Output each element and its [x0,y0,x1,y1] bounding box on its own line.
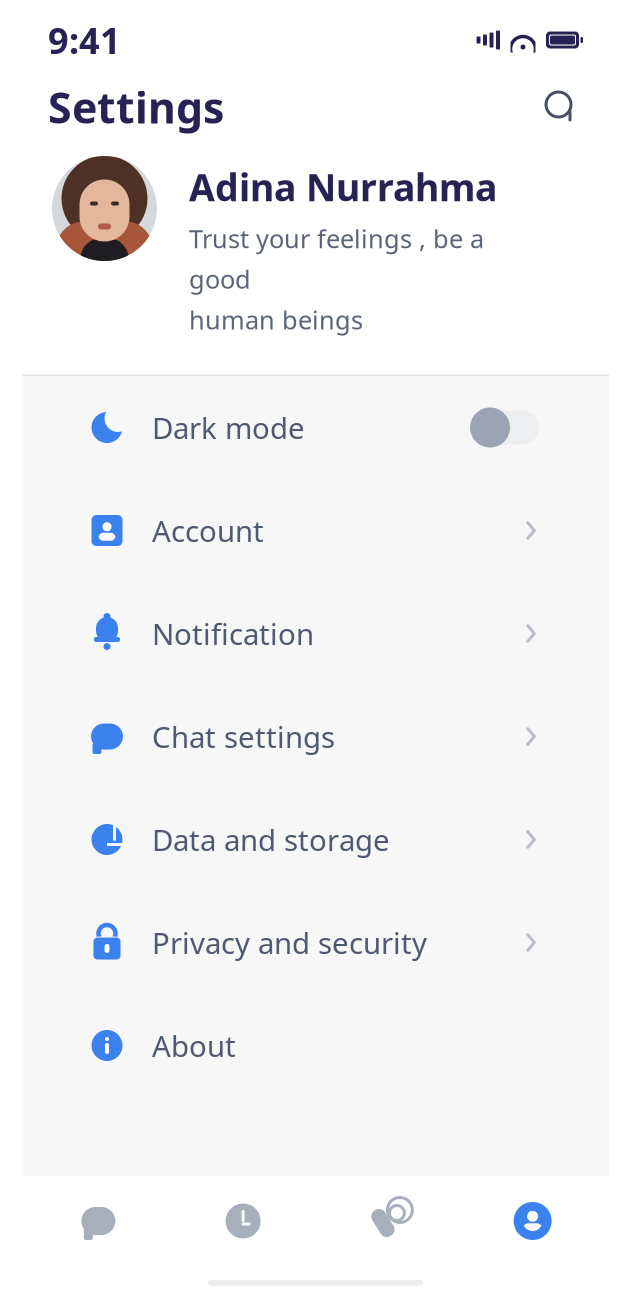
button[interactable]: Calls [315,1184,460,1258]
button[interactable]: Chat settings [22,685,609,788]
staticText: Adina Nurrahma [189,162,497,212]
button[interactable]: Adina Nurrahma [0,140,631,374]
staticText: About [152,1026,236,1065]
staticText: 9:41 [48,16,121,64]
button[interactable]: Notification [22,582,609,685]
button[interactable]: Data and storage [22,788,609,891]
staticText: Privacy and security [152,923,427,962]
staticText: Chat settings [152,717,335,756]
staticText: Data and storage [152,820,390,859]
staticText: Notification [152,614,314,653]
button[interactable]: Privacy and security [22,891,609,994]
staticText: Dark mode [152,408,305,447]
staticText: Account [152,511,264,550]
button[interactable]: Recent [171,1184,316,1258]
button[interactable]: About [22,994,609,1097]
button[interactable]: Dark mode [22,376,609,479]
button[interactable]: Search [539,85,583,129]
button[interactable]: Account [22,479,609,582]
staticText: Trust your feelings , be a good human be… [189,222,484,336]
staticText: Settings [48,79,224,135]
button[interactable]: Chats [26,1184,171,1258]
button[interactable]: Profile [460,1184,605,1258]
